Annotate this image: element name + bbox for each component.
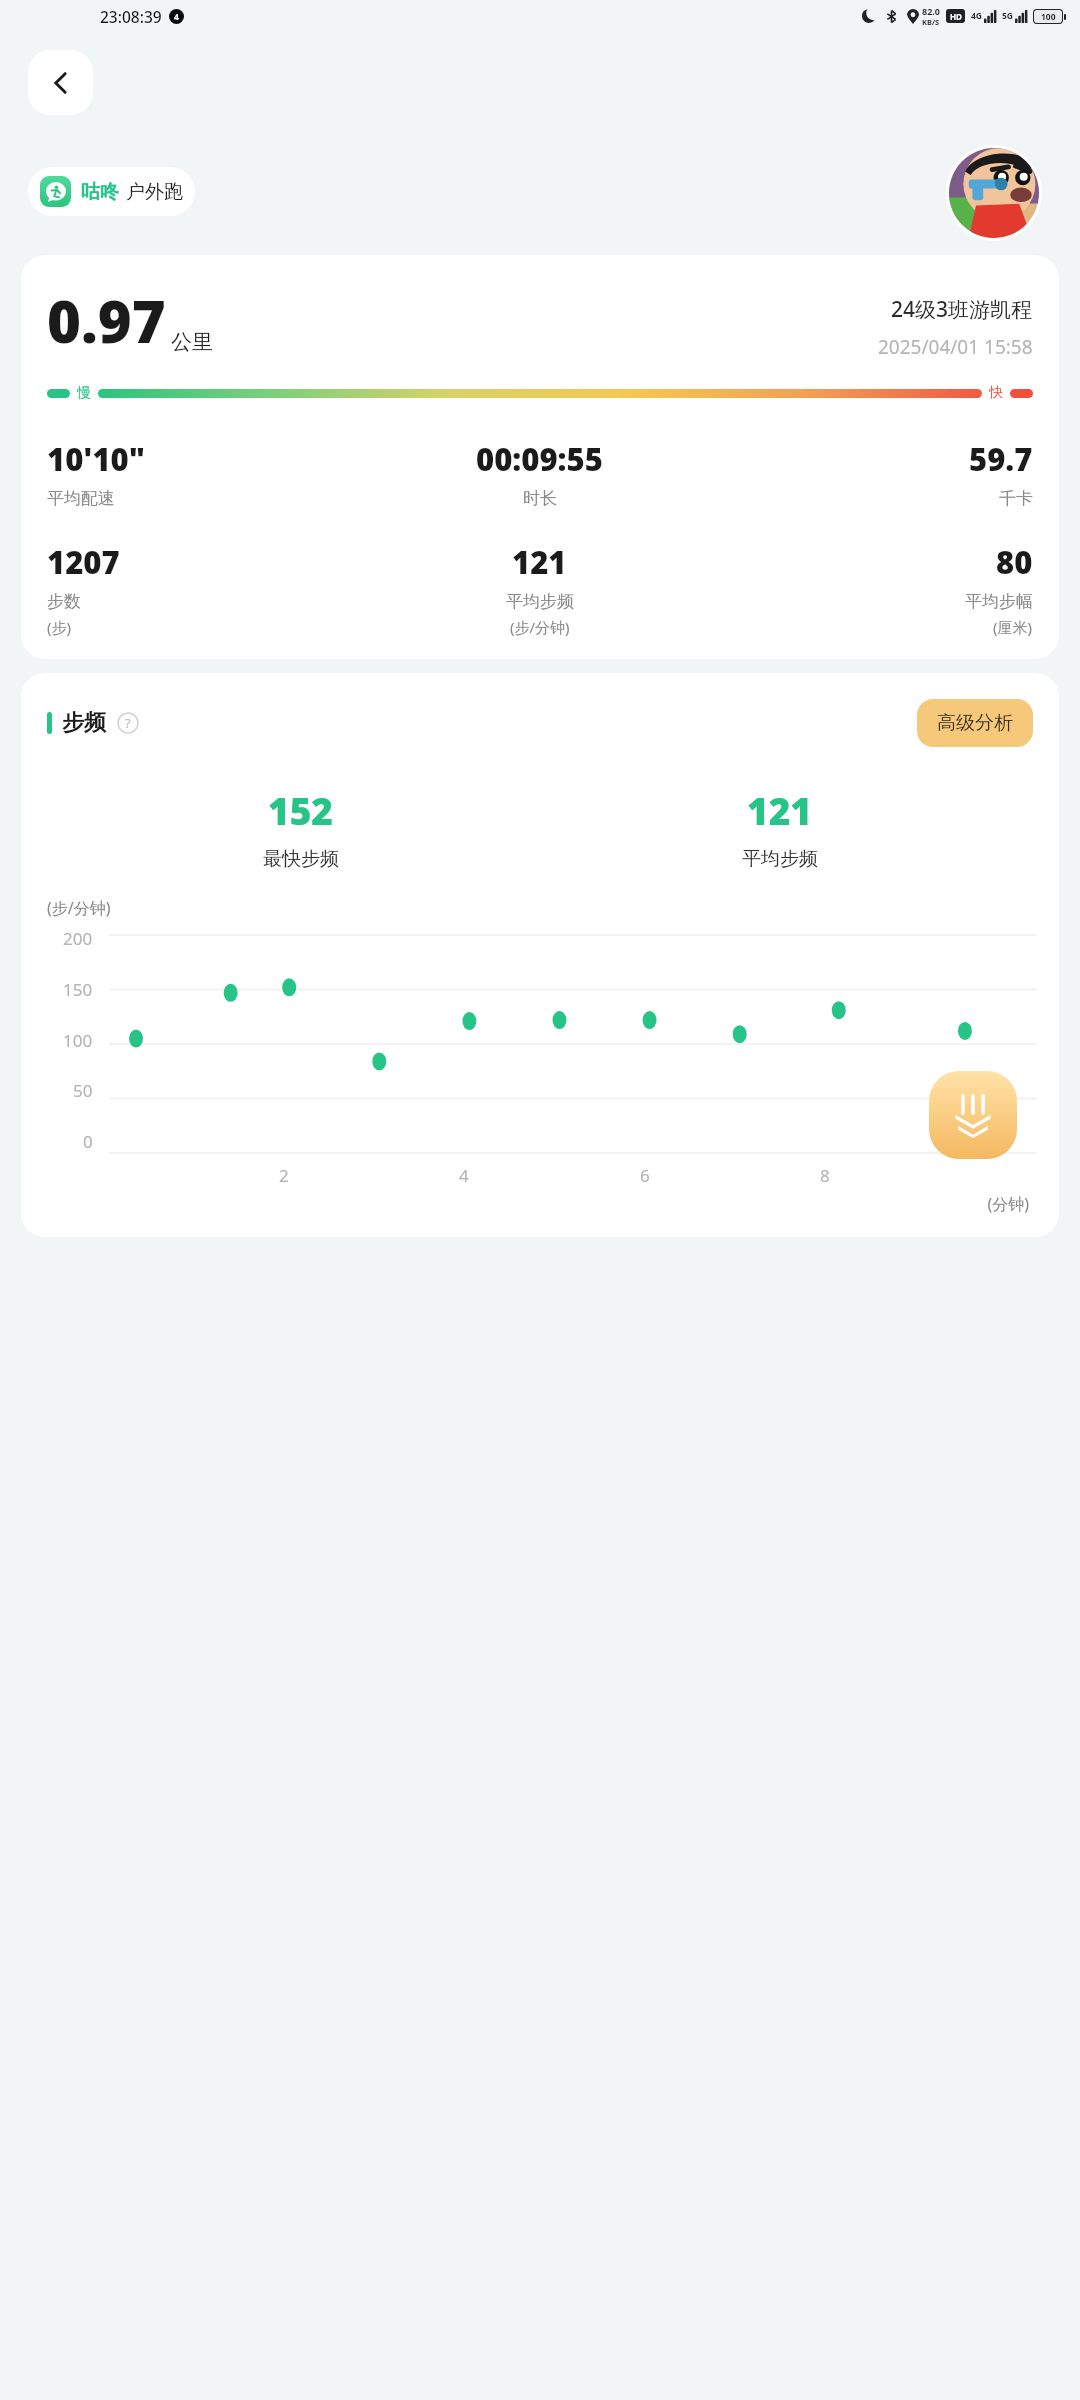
staticText: 152: [268, 785, 334, 835]
staticText: 82.0: [922, 5, 940, 17]
staticText: 4: [174, 11, 179, 23]
staticText: 最快步频: [263, 847, 339, 871]
staticText: 时长: [523, 488, 557, 509]
button[interactable]: 咕咚: [28, 167, 195, 216]
staticText: 0.97: [47, 281, 166, 360]
staticText: 80: [996, 541, 1033, 583]
staticText: 50: [73, 1079, 93, 1102]
button[interactable]: 高级分析: [917, 699, 1033, 747]
button[interactable]: 返回: [28, 50, 93, 115]
staticText: 快: [989, 384, 1003, 402]
staticText: 平均步频: [742, 847, 818, 871]
staticText: 200: [63, 927, 93, 950]
staticText: 慢: [77, 384, 91, 402]
button[interactable]: 用户头像: [949, 148, 1039, 238]
staticText: 步数: [47, 591, 81, 612]
staticText: 121: [512, 541, 567, 583]
staticText: HD: [950, 11, 962, 22]
staticText: (厘米): [993, 617, 1033, 637]
staticText: 千卡: [999, 488, 1033, 509]
staticText: 2025/04/01 15:58: [878, 334, 1033, 360]
staticText: 100: [1041, 11, 1056, 23]
staticText: 121: [747, 785, 813, 835]
staticText: 100: [63, 1029, 93, 1052]
staticText: 平均步频: [506, 591, 574, 612]
staticText: 5G: [1002, 10, 1014, 22]
staticText: (分钟): [21, 1193, 1029, 1215]
staticText: 24级3班游凯程: [891, 295, 1033, 324]
staticText: 4: [459, 1164, 469, 1187]
staticText: 1207: [47, 541, 120, 583]
staticText: KB/S: [922, 17, 940, 27]
staticText: 8: [820, 1164, 830, 1187]
staticText: 59.7: [969, 438, 1033, 480]
button[interactable]: 帮助: [117, 712, 139, 734]
staticText: ?: [125, 714, 131, 732]
staticText: (步): [47, 617, 72, 637]
staticText: (步/分钟): [510, 617, 570, 637]
staticText: 平均配速: [47, 488, 115, 509]
staticText: 2: [279, 1164, 289, 1187]
staticText: 平均步幅: [965, 591, 1033, 612]
staticText: 23:08:39: [100, 6, 162, 27]
staticText: 150: [63, 978, 93, 1001]
staticText: 00:09:55: [476, 438, 603, 480]
staticText: 步频: [62, 709, 106, 737]
staticText: 10'10": [47, 438, 145, 480]
staticText: 公里: [171, 329, 213, 355]
staticText: (步/分钟): [47, 897, 111, 919]
staticText: 户外跑: [126, 180, 183, 204]
staticText: 6: [640, 1164, 650, 1187]
button[interactable]: 0.97: [21, 255, 1059, 659]
staticText: 4G: [971, 10, 983, 22]
staticText: 高级分析: [937, 711, 1013, 735]
staticText: 咕咚: [81, 180, 119, 204]
staticText: 0: [83, 1130, 93, 1153]
button[interactable]: 展开更多: [929, 1071, 1017, 1159]
